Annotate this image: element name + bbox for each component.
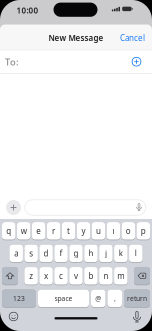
staticText: 123 (13, 294, 25, 303)
button[interactable]: u (92, 222, 105, 240)
staticText: . (114, 293, 116, 304)
button[interactable]: v (69, 267, 83, 285)
button[interactable]: Message text field (24, 199, 146, 215)
staticText: b (88, 270, 93, 281)
staticText: g (73, 248, 78, 259)
staticText: c (59, 270, 63, 281)
button[interactable]: Delete (134, 267, 150, 285)
staticText: e (36, 225, 41, 236)
button[interactable]: h (84, 245, 98, 263)
button[interactable]: 123 (2, 289, 36, 308)
button[interactable]: j (99, 245, 113, 263)
staticText: r (52, 225, 55, 236)
staticText: h (88, 248, 93, 259)
button[interactable]: x (39, 267, 53, 285)
button[interactable]: Shift (2, 267, 18, 285)
button[interactable]: Emoji (8, 311, 19, 322)
button[interactable]: space (38, 289, 89, 308)
button[interactable]: @ (91, 289, 105, 308)
staticText: d (44, 248, 49, 259)
staticText: j (105, 248, 107, 259)
staticText: p (141, 225, 146, 236)
button[interactable]: z (24, 267, 38, 285)
staticText: w (21, 225, 27, 236)
staticText: q (6, 225, 11, 236)
button[interactable]: g (69, 245, 83, 263)
staticText: o (126, 225, 131, 236)
button[interactable]: m (114, 267, 127, 285)
staticText: l (135, 248, 137, 259)
staticText: k (119, 248, 123, 259)
button[interactable]: t (62, 222, 75, 240)
staticText: t (67, 225, 70, 236)
staticText: x (44, 270, 48, 281)
button[interactable]: d (39, 245, 53, 263)
staticText: @ (95, 294, 101, 303)
button[interactable]: q (2, 222, 15, 240)
staticText: f (59, 248, 62, 259)
staticText: 10:00 (16, 5, 38, 16)
button[interactable]: r (47, 222, 60, 240)
staticText: y (81, 225, 85, 236)
button[interactable]: e (32, 222, 45, 240)
button[interactable]: . (107, 289, 122, 308)
button[interactable]: l (129, 245, 142, 263)
button[interactable]: return (124, 289, 150, 308)
button[interactable]: o (122, 222, 135, 240)
staticText: To: (5, 56, 19, 68)
staticText: Cancel (120, 33, 145, 43)
button[interactable]: c (54, 267, 68, 285)
staticText: i (112, 225, 114, 236)
staticText: return (127, 294, 147, 303)
button[interactable]: Add Contact (131, 56, 142, 67)
staticText: a (14, 248, 18, 259)
button[interactable]: w (17, 222, 30, 240)
staticText: u (96, 225, 101, 236)
button[interactable]: k (114, 245, 127, 263)
staticText: s (29, 248, 33, 259)
button[interactable]: b (84, 267, 98, 285)
staticText: v (74, 270, 78, 281)
button[interactable]: Cancel (120, 33, 145, 43)
button[interactable]: n (99, 267, 113, 285)
button[interactable]: y (77, 222, 90, 240)
button[interactable]: s (24, 245, 38, 263)
button[interactable]: Dictation (132, 311, 142, 323)
staticText: space (54, 294, 72, 303)
staticText: New Message (48, 33, 103, 43)
staticText: n (103, 270, 108, 281)
button[interactable]: a (9, 245, 23, 263)
button[interactable]: p (137, 222, 150, 240)
button[interactable]: Apps (6, 200, 21, 215)
staticText: z (29, 270, 33, 281)
button[interactable]: f (54, 245, 68, 263)
button[interactable]: i (107, 222, 120, 240)
staticText: m (117, 270, 124, 281)
